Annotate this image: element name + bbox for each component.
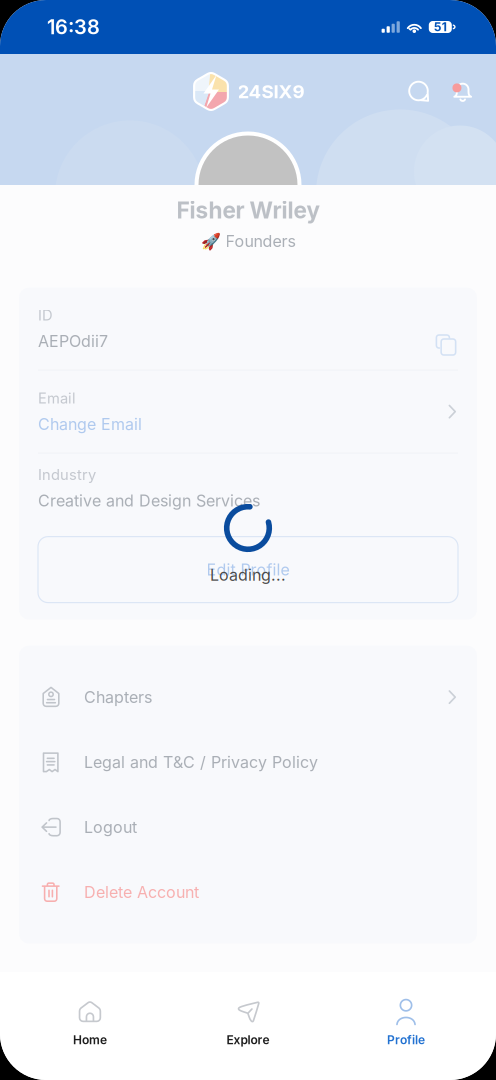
staticText: AEPOdii7 xyxy=(38,332,108,351)
button[interactable]: Notifications xyxy=(451,80,474,103)
staticText: 24SIX9 xyxy=(237,80,304,102)
staticText: Email xyxy=(38,389,76,407)
button[interactable]: Copy ID xyxy=(435,334,457,356)
staticText: Legal and T&C / Privacy Policy xyxy=(84,753,318,772)
staticText: Founders xyxy=(225,232,295,251)
button[interactable]: Logout xyxy=(19,795,477,860)
staticText: Logout xyxy=(84,818,137,837)
staticText: Explore xyxy=(226,1033,269,1047)
staticText: Change Email xyxy=(38,415,142,434)
button[interactable]: Home xyxy=(11,1000,169,1047)
button[interactable]: Chapters xyxy=(19,665,477,730)
button[interactable]: Edit Profile xyxy=(38,537,458,603)
staticText: ID xyxy=(38,306,53,324)
button[interactable]: Messages xyxy=(407,80,430,103)
button[interactable]: Email xyxy=(19,371,477,453)
staticText: Edit Profile xyxy=(206,560,289,579)
staticText: Fisher Wriley xyxy=(176,197,319,224)
staticText: Delete Account xyxy=(84,883,199,902)
staticText: Creative and Design Services xyxy=(38,491,260,510)
staticText: Home xyxy=(73,1033,107,1047)
button[interactable]: Delete Account xyxy=(19,860,477,925)
button[interactable]: Explore xyxy=(169,1000,327,1047)
staticText: 51 xyxy=(434,20,447,34)
staticText: Chapters xyxy=(84,688,152,707)
button[interactable]: Profile xyxy=(327,1000,485,1047)
staticText: 🚀 xyxy=(200,232,220,250)
staticText: 16:38 xyxy=(47,15,100,39)
staticText: Profile xyxy=(387,1033,425,1047)
staticText: Loading... xyxy=(210,566,286,584)
staticText: Industry xyxy=(38,466,96,483)
button[interactable]: Legal and T&C / Privacy Policy xyxy=(19,730,477,795)
